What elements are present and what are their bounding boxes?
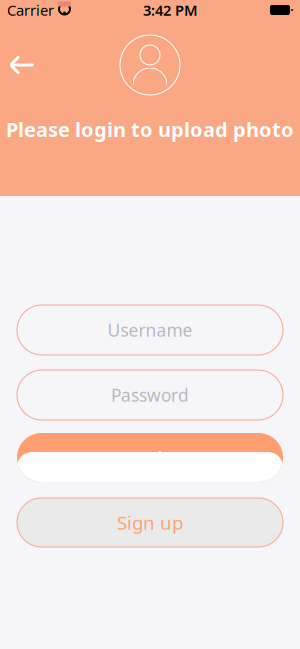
button[interactable]: Password <box>17 370 283 420</box>
button[interactable]: Username <box>17 305 283 355</box>
button[interactable]: Login <box>17 433 283 482</box>
staticText: Login <box>125 445 174 470</box>
staticText: Carrier <box>7 0 54 20</box>
staticText: Username <box>107 318 192 341</box>
button[interactable]: Sign up <box>17 498 283 547</box>
button[interactable]: Back <box>0 43 44 87</box>
staticText: Please login to upload photo <box>6 116 294 143</box>
staticText: Password <box>111 383 189 406</box>
staticText: Sign up <box>117 510 183 535</box>
staticText: 3:42 PM <box>143 0 198 20</box>
